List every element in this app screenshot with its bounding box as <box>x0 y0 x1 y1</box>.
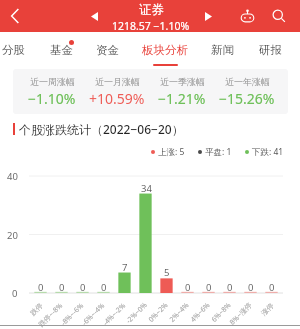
staticText: +10.59% <box>89 89 145 108</box>
staticText: -8%~-6% <box>59 300 87 328</box>
staticText: 资金 <box>96 43 119 57</box>
staticText: 近一年涨幅 <box>225 76 270 87</box>
button[interactable]: Next sector <box>199 7 217 25</box>
staticText: −1.10% <box>28 89 76 108</box>
staticText: 下跌: 41 <box>252 146 284 158</box>
button[interactable]: 近一周涨幅 <box>19 69 85 114</box>
button[interactable]: 板块分析 <box>142 32 188 68</box>
staticText: 1218.57 −1.10% <box>112 19 190 33</box>
staticText: 板块分析 <box>142 43 188 57</box>
staticText: 0 <box>185 281 191 294</box>
staticText: 5 <box>164 266 170 279</box>
button[interactable]: Previous sector <box>85 7 103 25</box>
staticText: 近一周涨幅 <box>30 76 75 87</box>
staticText: −1.21% <box>158 89 206 108</box>
staticText: 2%~4% <box>167 300 191 324</box>
staticText: 40 <box>7 170 18 183</box>
button[interactable]: 研报 <box>257 32 283 68</box>
staticText: 0 <box>206 281 212 294</box>
staticText: 0%~2% <box>146 300 170 324</box>
button[interactable]: 近一季涨幅 <box>149 69 215 114</box>
staticText: 0 <box>59 281 65 294</box>
staticText: 平盘: 1 <box>205 146 232 158</box>
button[interactable]: 新闻 <box>209 32 235 68</box>
staticText: 0 <box>12 287 18 300</box>
button[interactable]: 分股 <box>0 32 26 68</box>
staticText: 涨停 <box>259 301 276 317</box>
staticText: 上涨: 5 <box>158 146 185 158</box>
button[interactable]: Search <box>267 4 291 28</box>
staticText: 0 <box>227 281 233 294</box>
button[interactable]: 资金 <box>94 32 120 68</box>
staticText: 近一季涨幅 <box>160 76 205 87</box>
staticText: 34 <box>141 182 152 195</box>
staticText: 0 <box>269 281 275 294</box>
staticText: 0 <box>38 281 44 294</box>
button[interactable]: AI assistant <box>235 4 259 28</box>
staticText: 新闻 <box>211 43 234 57</box>
staticText: 20 <box>7 229 18 242</box>
staticText: -6%~-4% <box>80 300 108 328</box>
staticText: 7 <box>122 261 128 274</box>
staticText: 跌停 <box>28 301 45 317</box>
staticText: 基金 <box>50 43 73 57</box>
staticText: -4%~-2% <box>101 300 129 328</box>
staticText: 0 <box>248 281 254 294</box>
button[interactable]: 近一月涨幅 <box>84 69 150 114</box>
button[interactable]: 基金 <box>48 32 74 68</box>
staticText: 4%~6% <box>188 300 212 324</box>
button[interactable]: Back <box>0 1 30 31</box>
staticText: −15.26% <box>219 89 275 108</box>
staticText: 近一月涨幅 <box>95 76 140 87</box>
staticText: -2%~0% <box>124 300 150 326</box>
staticText: 个股涨跌统计（2022−06−20） <box>19 121 184 137</box>
staticText: 分股 <box>2 43 25 57</box>
staticText: 0 <box>80 281 86 294</box>
staticText: 6%~8% <box>209 300 233 324</box>
staticText: 0 <box>101 281 107 294</box>
button[interactable]: 近一年涨幅 <box>214 69 280 114</box>
staticText: 8%~涨停 <box>228 300 255 327</box>
staticText: 证券 <box>139 2 164 18</box>
staticText: 跌停~-8% <box>36 300 65 329</box>
staticText: 研报 <box>259 43 282 57</box>
